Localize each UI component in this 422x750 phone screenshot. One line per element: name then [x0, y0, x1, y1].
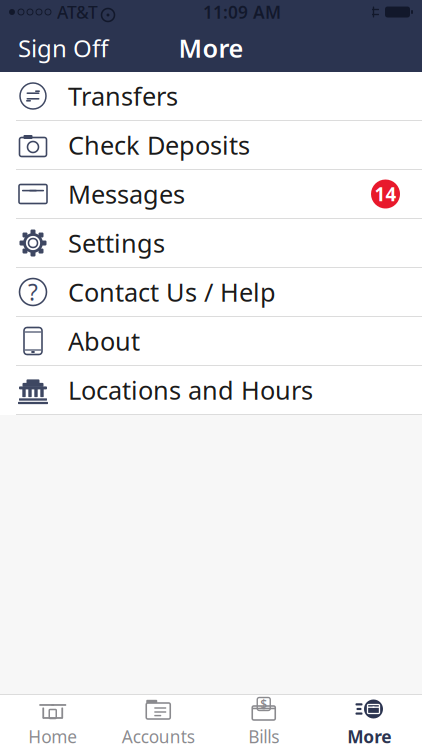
button[interactable]: Home	[0, 695, 105, 750]
button[interactable]: Settings	[0, 219, 422, 268]
staticText: Locations and Hours	[68, 373, 313, 407]
staticText: Home	[28, 725, 77, 748]
staticText: More	[178, 31, 243, 65]
staticText: Messages	[68, 177, 185, 211]
button[interactable]: Sign Off	[0, 24, 127, 72]
button[interactable]: Check Deposits	[0, 121, 422, 170]
staticText: 11:09 AM	[203, 0, 281, 23]
staticText: Transfers	[68, 79, 178, 113]
staticText: Check Deposits	[68, 128, 250, 162]
staticText: 14	[374, 182, 396, 206]
button[interactable]: Messages	[0, 170, 422, 219]
staticText: AT&T	[57, 0, 98, 23]
staticText: About	[68, 324, 140, 358]
button[interactable]: ?	[0, 268, 422, 317]
staticText: $	[260, 696, 267, 712]
staticText: ?	[28, 277, 38, 307]
staticText: Sign Off	[18, 32, 109, 64]
staticText: Accounts	[122, 725, 195, 748]
staticText: More	[347, 725, 391, 748]
staticText: Settings	[68, 226, 165, 260]
staticText: Contact Us / Help	[68, 275, 276, 309]
button[interactable]: About	[0, 317, 422, 366]
staticText: Bills	[248, 725, 279, 748]
button[interactable]: Locations and Hours	[0, 366, 422, 415]
button[interactable]: More	[316, 695, 422, 750]
button[interactable]: Transfers	[0, 72, 422, 121]
button[interactable]: Accounts	[105, 695, 211, 750]
button[interactable]: $	[211, 695, 316, 750]
